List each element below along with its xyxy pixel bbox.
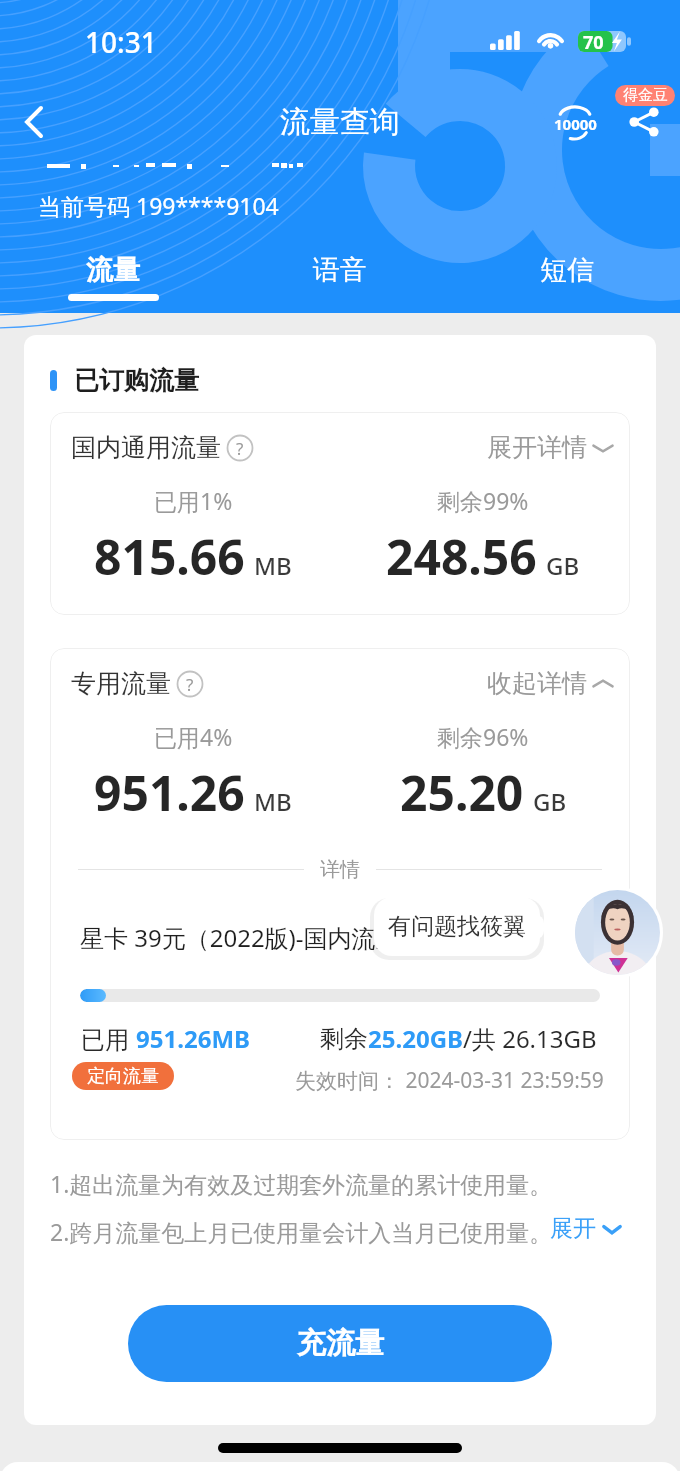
staticText: ? xyxy=(236,437,244,460)
staticText: 详情 xyxy=(320,857,360,882)
button[interactable]: 流量 xyxy=(53,248,173,306)
staticText: 充流量 xyxy=(297,1325,384,1362)
staticText: MB xyxy=(254,549,292,582)
staticText: 收起详情 xyxy=(487,668,587,699)
staticText: 得金豆 xyxy=(623,86,668,105)
staticText: 815.66 xyxy=(94,524,245,589)
staticText: 剩余99% xyxy=(437,485,529,516)
staticText: 剩余 xyxy=(320,1024,368,1054)
staticText: 星卡 39元（2022版)-国内流量 xyxy=(80,921,400,954)
staticText: 951.26MB xyxy=(136,1022,250,1055)
staticText: ? xyxy=(186,673,194,696)
staticText: 语音 xyxy=(313,253,367,287)
staticText: 25.20 xyxy=(400,760,524,825)
button[interactable]: Assistant xyxy=(575,890,660,975)
button[interactable]: 语音 xyxy=(280,248,400,306)
staticText: 248.56 xyxy=(386,524,537,589)
button[interactable]: 展开详情 xyxy=(487,432,615,463)
button[interactable]: Share xyxy=(618,96,670,148)
staticText: 25.20GB xyxy=(368,1022,463,1055)
staticText: 1.超出流量为有效及过期套外流量的累计使用量。 xyxy=(50,1168,553,1199)
button[interactable]: 有问题找筱翼 xyxy=(374,897,540,956)
button[interactable]: Help xyxy=(226,434,254,462)
staticText: 2.跨月流量包上月已使用量会计入当月已使用量。 xyxy=(50,1216,553,1246)
button[interactable]: 展开 xyxy=(550,1214,624,1243)
button[interactable]: Back xyxy=(8,96,60,148)
button[interactable]: 短信 xyxy=(507,248,627,306)
staticText: GB xyxy=(546,549,580,582)
staticText: 展开 xyxy=(550,1214,596,1243)
staticText: MB xyxy=(254,785,292,818)
button[interactable]: 得金豆 xyxy=(615,85,675,106)
staticText: /共 26.13GB xyxy=(463,1022,597,1055)
button[interactable]: 充流量 xyxy=(128,1305,552,1382)
staticText: 70 xyxy=(583,30,604,51)
staticText: 展开详情 xyxy=(487,432,587,463)
staticText: 失效时间： 2024-03-31 23:59:59 xyxy=(295,1066,604,1095)
staticText: 10000 xyxy=(554,114,597,134)
button[interactable]: Help xyxy=(176,670,204,698)
staticText: GB xyxy=(533,785,567,818)
staticText: 951.26 xyxy=(94,760,245,825)
staticText: 10:31 xyxy=(85,23,157,61)
staticText: 流量 xyxy=(86,253,140,287)
staticText: 剩余96% xyxy=(437,721,529,752)
staticText: 国内通用流量 xyxy=(71,432,221,463)
staticText: 短信 xyxy=(540,253,594,287)
staticText: 已订购流量 xyxy=(74,365,199,396)
staticText: 有问题找筱翼 xyxy=(388,912,526,941)
staticText: 已用 xyxy=(81,1022,136,1055)
button[interactable]: 定向流量 xyxy=(72,1062,174,1090)
staticText: 当前号码 199****9104 xyxy=(38,190,279,221)
staticText: 已用4% xyxy=(154,721,233,752)
staticText: 专用流量 xyxy=(71,668,171,699)
button[interactable]: Customer service 10000 xyxy=(548,96,602,150)
staticText: 定向流量 xyxy=(87,1065,159,1088)
staticText: 流量查询 xyxy=(280,103,400,141)
button[interactable]: 收起详情 xyxy=(487,668,615,699)
staticText: 已用1% xyxy=(154,485,233,516)
